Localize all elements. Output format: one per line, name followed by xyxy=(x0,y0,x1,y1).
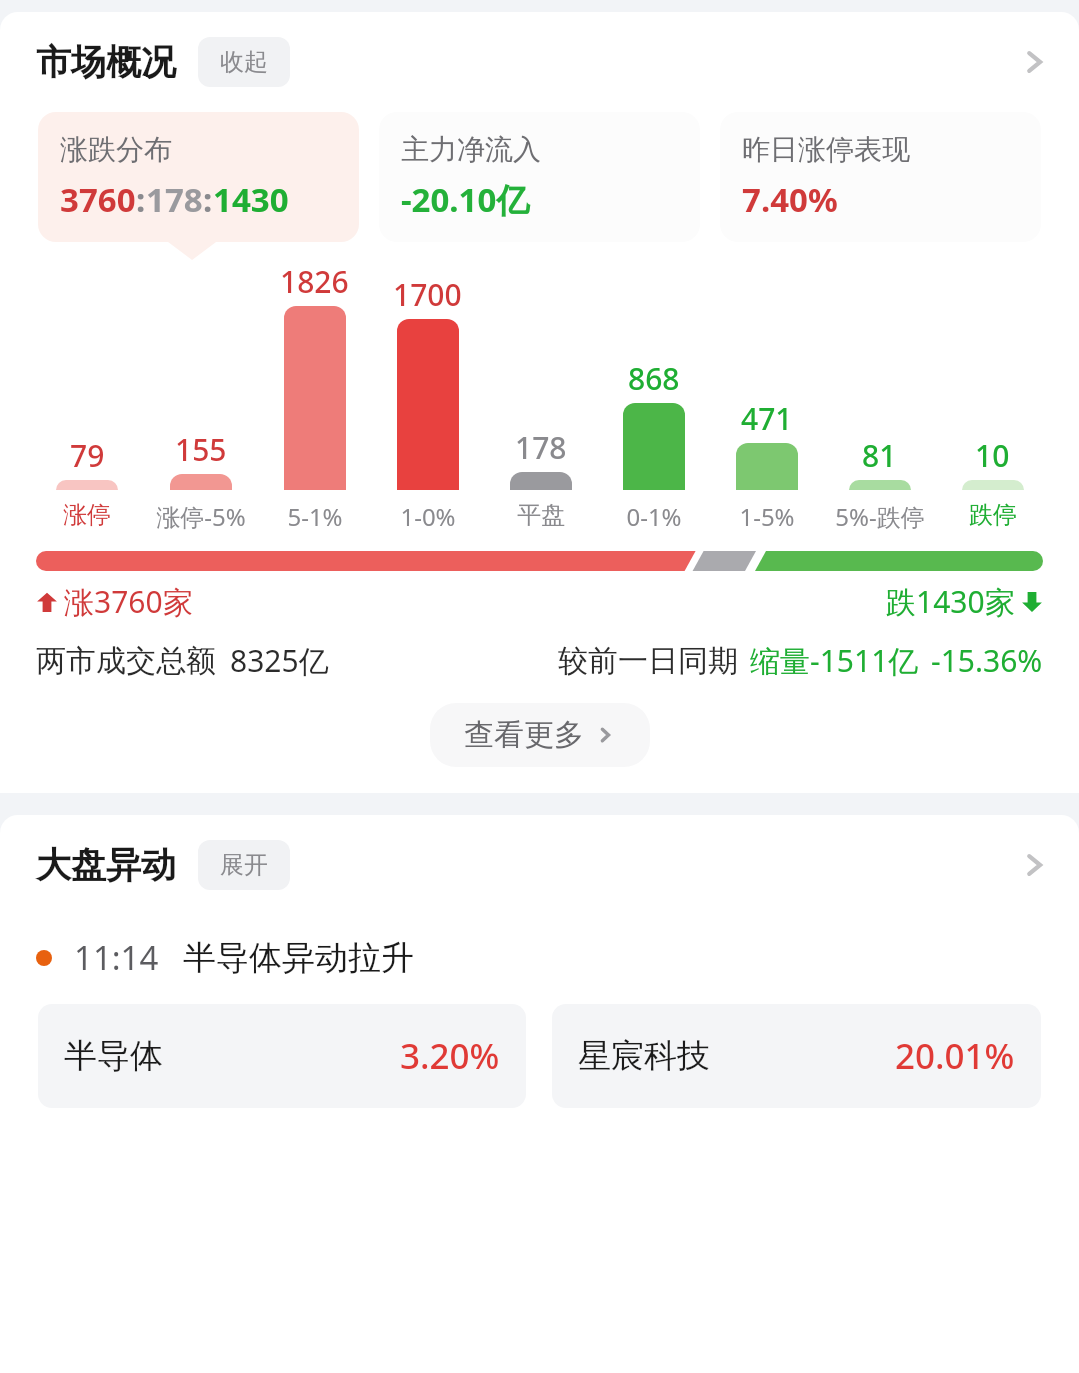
staticText: 两市成交总额 xyxy=(36,642,216,680)
staticText: 市场概况 xyxy=(36,40,176,84)
button[interactable]: 半导体 xyxy=(38,1004,526,1108)
staticText: 缩量-1511亿 xyxy=(750,640,919,681)
staticText: : xyxy=(136,177,146,222)
staticText: 跌停 xyxy=(969,500,1017,530)
staticText: 大盘异动 xyxy=(36,843,176,887)
staticText: 7.40% xyxy=(742,177,838,222)
staticText: 涨3760家 xyxy=(64,581,193,622)
staticText: 昨日涨停表现 xyxy=(742,132,910,167)
staticText: 涨停 xyxy=(63,500,111,530)
staticText: 1-5% xyxy=(739,500,795,533)
staticText: 178 xyxy=(146,177,203,222)
other: More xyxy=(1017,848,1051,882)
staticText: 收起 xyxy=(220,47,268,77)
staticText: 3.20% xyxy=(400,1032,500,1080)
staticText: 半导体 xyxy=(64,1035,163,1077)
staticText: 155 xyxy=(175,429,227,470)
staticText: 8325亿 xyxy=(230,640,329,681)
staticText: 178 xyxy=(515,427,567,468)
staticText: 1-0% xyxy=(400,500,456,533)
button[interactable]: 查看更多 xyxy=(430,703,650,767)
button[interactable]: 涨跌分布 xyxy=(38,112,359,242)
staticText: 79 xyxy=(70,435,105,476)
staticText: 涨停-5% xyxy=(156,500,246,533)
staticText: 3760 xyxy=(60,177,136,222)
staticText: 1430 xyxy=(213,177,289,222)
staticText: 星宸科技 xyxy=(578,1035,710,1077)
staticText: 20.01% xyxy=(895,1032,1015,1080)
staticText: 471 xyxy=(741,398,793,439)
staticText: 较前一日同期 xyxy=(558,642,738,680)
staticText: 0-1% xyxy=(626,500,682,533)
button[interactable]: 展开 xyxy=(198,840,290,890)
staticText: 1826 xyxy=(280,261,349,302)
staticText: 5%-跌停 xyxy=(835,500,925,533)
button[interactable]: 市场概况 xyxy=(0,12,1079,112)
staticText: 查看更多 xyxy=(464,716,584,754)
staticText: -15.36% xyxy=(931,640,1043,681)
staticText: 10 xyxy=(975,435,1010,476)
button[interactable]: 主力净流入 xyxy=(379,112,700,242)
staticText: 868 xyxy=(628,358,680,399)
staticText: 5-1% xyxy=(287,500,343,533)
staticText: 81 xyxy=(862,435,897,476)
staticText: : xyxy=(203,177,213,222)
staticText: 半导体异动拉升 xyxy=(183,937,414,979)
staticText: 11:14 xyxy=(74,935,159,980)
staticText: 平盘 xyxy=(517,500,565,530)
button[interactable]: 收起 xyxy=(198,37,290,87)
staticText: 涨跌分布 xyxy=(60,132,172,167)
staticText: 1700 xyxy=(393,274,462,315)
button[interactable]: 11:14 xyxy=(0,929,1079,986)
staticText: 展开 xyxy=(220,850,268,880)
other: More xyxy=(1017,45,1051,79)
button[interactable]: 昨日涨停表现 xyxy=(720,112,1041,242)
staticText: 跌1430家 xyxy=(886,581,1015,622)
staticText: -20.10亿 xyxy=(401,177,530,222)
button[interactable]: 大盘异动 xyxy=(0,815,1079,915)
staticText: 主力净流入 xyxy=(401,132,541,167)
button[interactable]: 星宸科技 xyxy=(552,1004,1041,1108)
